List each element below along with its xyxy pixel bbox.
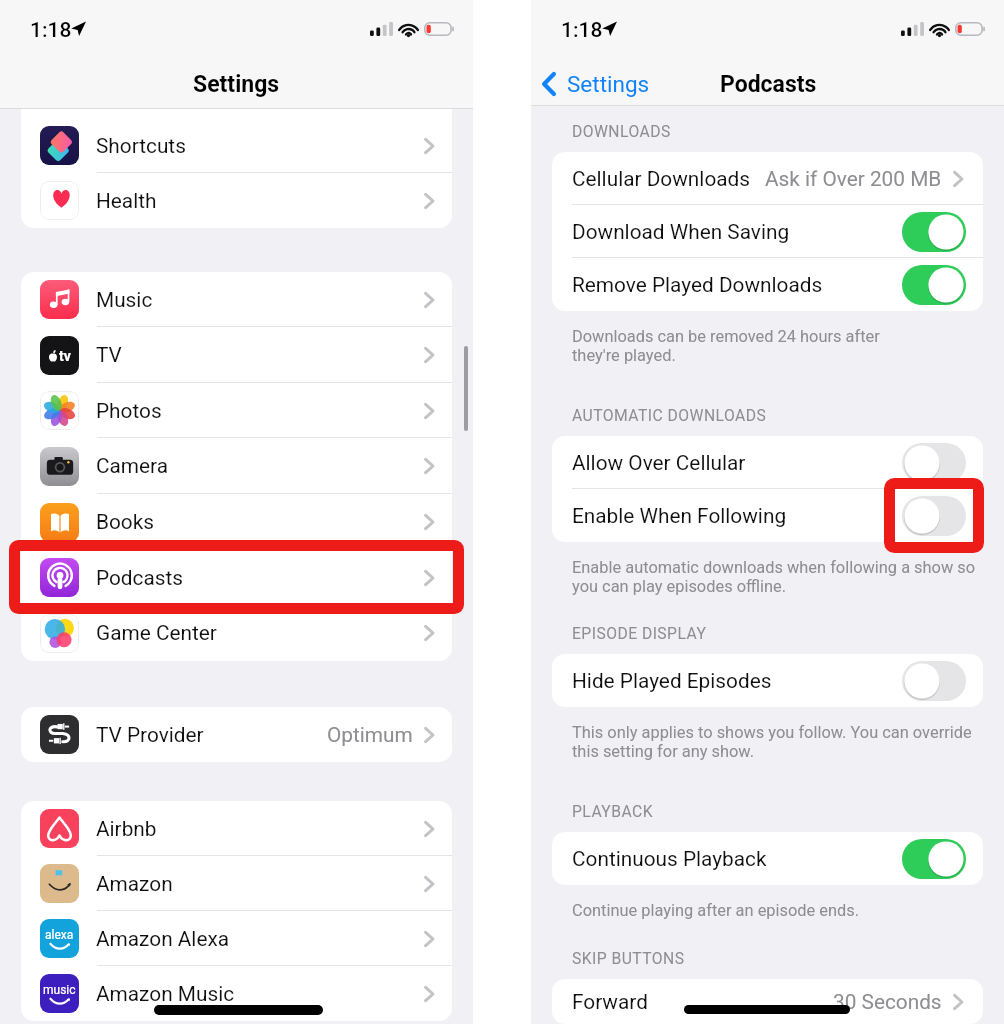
staticText: Forward (572, 990, 648, 1014)
staticText: Settings (567, 71, 650, 97)
button[interactable]: Continuous Playback on (902, 839, 966, 879)
staticText: Continue playing after an episode ends. (572, 901, 860, 920)
button[interactable]: TV Provider (21, 707, 452, 762)
button[interactable]: Amazon (21, 856, 452, 911)
staticText: 1:18 (30, 18, 72, 43)
button[interactable]: Podcasts (21, 550, 452, 605)
staticText: Ask if Over 200 MB (765, 167, 942, 191)
staticText: Download When Saving (572, 220, 790, 244)
button[interactable]: Remove Played Downloads (552, 258, 983, 311)
button[interactable]: alexa (21, 911, 452, 966)
staticText: Enable When Following (572, 504, 787, 528)
button[interactable]: Download When Saving (552, 205, 983, 258)
button[interactable]: Allow Over Cellular off (902, 443, 966, 483)
button[interactable]: Health (21, 173, 452, 228)
button[interactable]: Download When Saving on (902, 212, 966, 252)
staticText: DOWNLOADS (572, 122, 671, 140)
button[interactable]: Back to Settings (531, 71, 744, 97)
button[interactable]: Camera (21, 438, 452, 494)
button[interactable]: Enable When Following off (902, 496, 966, 536)
button[interactable]: Hide Played Episodes (552, 654, 983, 707)
staticText: Amazon (96, 872, 173, 896)
staticText: Podcasts (720, 71, 817, 98)
button[interactable]: Books (21, 494, 452, 550)
staticText: 30 Seconds (833, 990, 942, 1014)
staticText: Amazon Alexa (96, 927, 230, 951)
button[interactable]: Music (21, 272, 452, 327)
staticText: Downloads can be removed 24 hours after … (572, 327, 880, 365)
staticText: Camera (96, 454, 169, 478)
button[interactable]: Shortcuts (21, 118, 452, 173)
button[interactable]: Allow Over Cellular (552, 436, 983, 489)
staticText: Optimum (327, 723, 413, 747)
button[interactable]: Airbnb (21, 801, 452, 856)
staticText: SKIP BUTTONS (572, 949, 685, 967)
staticText: Game Center (96, 621, 217, 645)
staticText: Allow Over Cellular (572, 451, 746, 475)
button[interactable]: tv (21, 327, 452, 383)
staticText: Health (96, 189, 157, 213)
button[interactable]: Game Center (21, 605, 452, 661)
staticText: TV Provider (96, 723, 204, 747)
staticText: alexa (45, 928, 74, 942)
button[interactable]: Cellular Downloads (552, 152, 983, 205)
staticText: Shortcuts (96, 134, 186, 158)
staticText: Podcasts (96, 566, 184, 590)
staticText: Photos (96, 399, 162, 423)
staticText: music (43, 983, 76, 997)
staticText: Cellular Downloads (572, 167, 751, 191)
button[interactable]: Continuous Playback (552, 832, 983, 885)
staticText: Airbnb (96, 817, 157, 841)
staticText: This only applies to shows you follow. Y… (572, 723, 972, 761)
staticText: EPISODE DISPLAY (572, 624, 707, 642)
button[interactable]: Photos (21, 383, 452, 438)
button[interactable]: music (21, 966, 452, 1021)
button[interactable]: Forward (552, 979, 983, 1024)
staticText: Hide Played Episodes (572, 669, 772, 693)
staticText: PLAYBACK (572, 802, 654, 820)
staticText: Music (96, 288, 153, 312)
button[interactable]: Remove Played Downloads on (902, 265, 966, 305)
staticText: 1:18 (561, 18, 603, 43)
staticText: TV (96, 343, 122, 367)
staticText: Amazon Music (96, 982, 235, 1006)
staticText: tv (59, 348, 71, 364)
staticText: Continuous Playback (572, 847, 767, 871)
staticText: Enable automatic downloads when followin… (572, 558, 976, 596)
staticText: Books (96, 510, 154, 534)
staticText: AUTOMATIC DOWNLOADS (572, 406, 767, 424)
button[interactable]: Hide Played Episodes off (902, 661, 966, 701)
button[interactable]: Enable When Following (552, 489, 983, 542)
staticText: Remove Played Downloads (572, 273, 823, 297)
staticText: Settings (193, 71, 280, 98)
